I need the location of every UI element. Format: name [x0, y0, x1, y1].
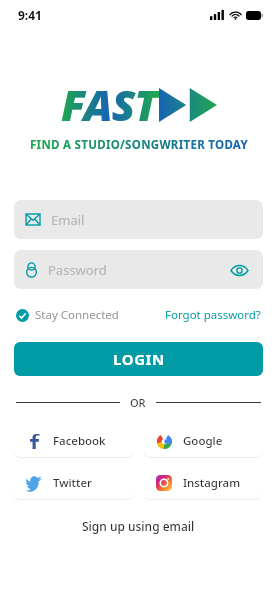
button[interactable]: Password: [14, 250, 263, 289]
staticText: OR: [130, 395, 146, 410]
staticText: LOGIN: [113, 349, 165, 369]
button[interactable]: Twitter: [14, 467, 133, 499]
button[interactable]: Show password: [227, 258, 251, 282]
staticText: Stay Connected: [35, 307, 119, 323]
staticText: Forgot password?: [165, 307, 261, 323]
staticText: Facebook: [53, 433, 106, 449]
staticText: Instagram: [183, 475, 241, 491]
button[interactable]: Sign up using email: [14, 509, 263, 542]
button[interactable]: Google: [144, 425, 263, 457]
button[interactable]: Forgot password?: [165, 307, 261, 323]
button[interactable]: Stay Connected: [16, 307, 119, 323]
button[interactable]: Instagram: [144, 467, 263, 499]
staticText: Email: [51, 211, 85, 229]
button[interactable]: Email: [14, 200, 263, 239]
staticText: Sign up using email: [82, 518, 195, 534]
button[interactable]: LOGIN: [14, 342, 263, 376]
staticText: Google: [183, 433, 223, 449]
staticText: FIND A STUDIO/SONGWRITER TODAY: [30, 137, 248, 153]
staticText: Twitter: [53, 475, 92, 491]
button[interactable]: Facebook: [14, 425, 133, 457]
staticText: 9:41: [18, 7, 42, 23]
staticText: Password: [48, 261, 107, 279]
staticText: FAST: [61, 75, 157, 134]
